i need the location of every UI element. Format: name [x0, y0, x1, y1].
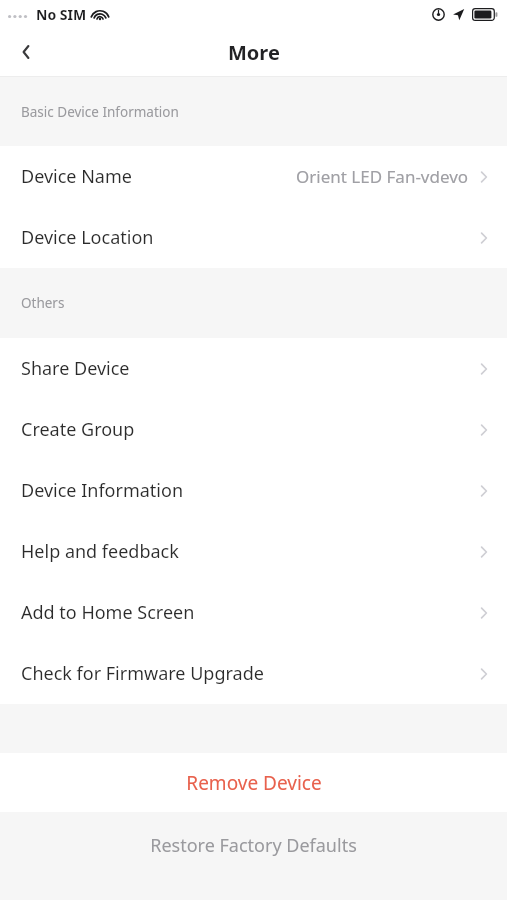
staticText: Restore Factory Defaults — [150, 833, 357, 858]
staticText: Orient LED Fan-vdevo — [296, 165, 469, 188]
button[interactable]: Help and feedback — [0, 521, 507, 582]
staticText: Device Information — [21, 478, 184, 503]
staticText: Others — [21, 294, 65, 312]
button[interactable]: Restore Factory Defaults — [0, 812, 507, 900]
staticText: No SIM — [36, 5, 87, 24]
staticText: Share Device — [21, 356, 130, 381]
button[interactable]: Device Information — [0, 460, 507, 521]
staticText: Create Group — [21, 417, 135, 442]
button[interactable]: Back — [6, 32, 46, 72]
staticText: Check for Firmware Upgrade — [21, 661, 264, 686]
button[interactable]: Share Device — [0, 338, 507, 399]
staticText: Add to Home Screen — [21, 600, 195, 625]
button[interactable]: Device Name — [0, 146, 507, 207]
staticText: Device Location — [21, 225, 154, 250]
button[interactable]: Check for Firmware Upgrade — [0, 643, 507, 704]
button[interactable]: Device Location — [0, 207, 507, 268]
button[interactable]: Create Group — [0, 399, 507, 460]
button[interactable]: Add to Home Screen — [0, 582, 507, 643]
staticText: More — [228, 39, 280, 66]
staticText: Basic Device Information — [21, 103, 179, 121]
staticText: Device Name — [21, 164, 132, 189]
button[interactable]: Remove Device — [0, 753, 507, 812]
staticText: Help and feedback — [21, 539, 179, 564]
staticText: Remove Device — [186, 770, 322, 796]
